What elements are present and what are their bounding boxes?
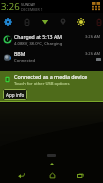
staticText: Connected as a media device bbox=[14, 73, 88, 80]
button[interactable]: Charged at 5:13 AM bbox=[0, 31, 103, 48]
button[interactable]: BBM bbox=[0, 48, 103, 66]
staticText: DECEMBER 1 bbox=[21, 7, 43, 12]
button[interactable]: Battery bbox=[19, 13, 35, 31]
button[interactable]: App info bbox=[3, 89, 27, 100]
button[interactable]: Brightness bbox=[73, 13, 89, 31]
button[interactable]: Wi‑Fi bbox=[37, 13, 53, 31]
staticText: 3:26 AM bbox=[85, 51, 101, 56]
button[interactable]: Back bbox=[9, 167, 33, 183]
button[interactable]: Settings bbox=[0, 13, 16, 31]
staticText: 4.088V, 38.0°C, Charging bbox=[14, 41, 63, 47]
staticText: BBM bbox=[14, 50, 26, 57]
button[interactable]: Quick settings bbox=[91, 1, 101, 11]
staticText: Touch for other USB options bbox=[14, 81, 70, 87]
staticText: Charged at 5:13 AM bbox=[14, 33, 62, 40]
staticText: SUNDAY bbox=[21, 2, 35, 7]
button[interactable]: Home bbox=[40, 167, 64, 183]
button[interactable]: Connected as a media device bbox=[0, 71, 103, 101]
staticText: Connected bbox=[14, 58, 36, 64]
button[interactable]: Close notification shade bbox=[47, 154, 56, 157]
staticText: 3:26 bbox=[1, 0, 20, 13]
button[interactable]: Rotation bbox=[91, 13, 103, 31]
staticText: App info bbox=[6, 92, 25, 98]
button[interactable]: Location bbox=[55, 13, 71, 31]
staticText: 3:26 AM bbox=[85, 34, 101, 39]
button[interactable]: Recent apps bbox=[68, 167, 92, 183]
